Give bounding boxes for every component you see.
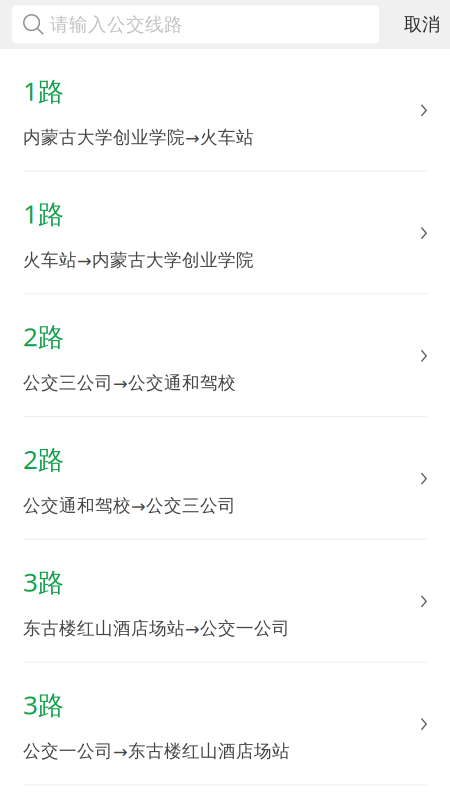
staticText: 公交通和驾校→公交三公司 <box>23 495 236 517</box>
staticText: 东古楼红山酒店场站→公交一公司 <box>23 617 290 639</box>
staticText: 3路 <box>23 564 64 599</box>
button[interactable]: 1路 <box>0 49 450 172</box>
button[interactable]: 3路 <box>0 540 450 663</box>
button[interactable]: 请输入公交线路 <box>12 5 379 43</box>
staticText: 公交一公司→东古楼红山酒店场站 <box>23 740 290 762</box>
staticText: 1路 <box>23 196 64 231</box>
button[interactable]: 1路 <box>0 172 450 295</box>
staticText: 2路 <box>23 318 64 354</box>
staticText: 2路 <box>23 441 64 477</box>
staticText: 取消 <box>404 13 440 36</box>
staticText: 请输入公交线路 <box>50 13 183 36</box>
button[interactable]: 取消 <box>394 5 450 43</box>
staticText: 内蒙古大学创业学院→火车站 <box>23 126 254 148</box>
staticText: 公交三公司→公交通和驾校 <box>23 372 236 394</box>
button[interactable]: 3路 <box>0 663 450 786</box>
button[interactable]: 2路 <box>0 417 450 540</box>
staticText: 3路 <box>23 687 64 722</box>
staticText: 1路 <box>23 73 64 108</box>
button[interactable]: 2路 <box>0 294 450 417</box>
staticText: 火车站→内蒙古大学创业学院 <box>23 249 254 271</box>
